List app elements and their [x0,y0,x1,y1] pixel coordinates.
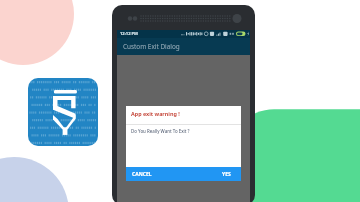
staticText: CANCEL [132,171,152,178]
staticText: Do You Really Want To Exit ? [131,128,190,134]
button[interactable]: App logo [28,78,98,146]
staticText: App exit warning ! [131,110,180,117]
button[interactable]: CANCEL [126,167,166,181]
staticText: YES [222,171,231,178]
staticText: 12:12 PM [120,31,138,37]
staticText: Custom Exit Dialog [123,42,180,51]
button[interactable]: YES [215,167,241,181]
